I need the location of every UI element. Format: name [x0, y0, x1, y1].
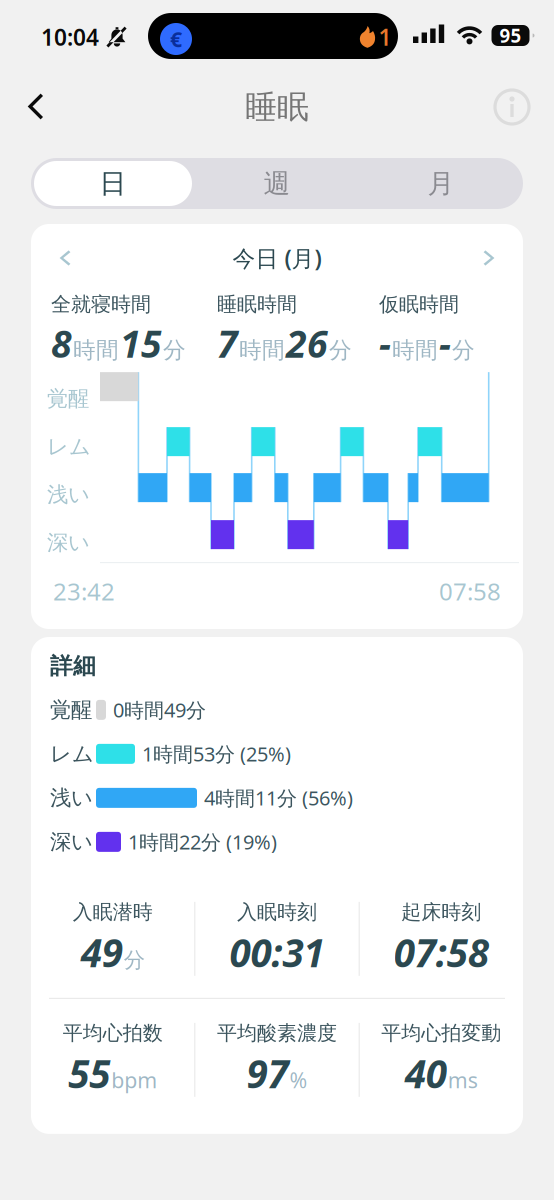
staticText: レム — [47, 433, 91, 460]
staticText: 時間 — [73, 336, 119, 364]
button[interactable]: Next day — [469, 240, 509, 276]
staticText: % — [289, 1066, 307, 1094]
staticText: 覚醒 — [47, 385, 89, 412]
staticText: 95 — [499, 23, 521, 48]
button[interactable]: Info — [484, 87, 540, 127]
staticText: 0時間49分 — [113, 697, 206, 723]
staticText: 平均心拍変動 — [381, 1021, 501, 1045]
staticText: 起床時刻 — [401, 900, 481, 924]
staticText: 4時間11分 (56%) — [204, 785, 353, 811]
staticText: 40 — [405, 1047, 447, 1099]
staticText: 07:58 — [439, 575, 501, 607]
staticText: 1時間53分 (25%) — [142, 741, 291, 767]
staticText: 全就寝時間 — [51, 292, 151, 317]
staticText: 49 — [81, 926, 123, 978]
staticText: 分 — [163, 336, 186, 364]
staticText: 入眠時刻 — [237, 900, 317, 924]
staticText: bpm — [111, 1066, 157, 1094]
staticText: 平均心拍数 — [63, 1021, 163, 1045]
staticText: 10:04 — [41, 22, 99, 52]
staticText: 分 — [452, 336, 475, 364]
staticText: レム — [50, 741, 94, 767]
staticText: 8 — [51, 319, 72, 368]
staticText: 今日 (月) — [232, 243, 321, 273]
button[interactable]: Back — [14, 82, 60, 132]
staticText: 26 — [286, 319, 328, 368]
button[interactable]: Previous day — [45, 240, 85, 276]
staticText: 時間 — [392, 336, 438, 364]
staticText: 23:42 — [53, 575, 115, 607]
staticText: 浅い — [47, 481, 90, 508]
staticText: - — [439, 319, 451, 368]
staticText: 97 — [246, 1047, 288, 1099]
staticText: 月 — [427, 167, 454, 200]
button[interactable]: 日 — [31, 158, 195, 209]
staticText: 15 — [120, 319, 162, 368]
button[interactable]: 週 — [195, 158, 359, 209]
staticText: 深い — [47, 529, 90, 556]
staticText: € — [170, 25, 182, 53]
staticText: 睡眠 — [245, 87, 309, 127]
staticText: 平均酸素濃度 — [217, 1021, 337, 1045]
staticText: 深い — [50, 829, 93, 855]
staticText: 入眠潜時 — [73, 900, 153, 924]
staticText: 浅い — [50, 785, 93, 811]
staticText: 日 — [99, 167, 126, 200]
staticText: 週 — [263, 167, 290, 200]
staticText: 詳細 — [50, 652, 96, 680]
staticText: 仮眠時間 — [379, 292, 459, 317]
staticText: ms — [448, 1066, 478, 1094]
staticText: 時間 — [239, 336, 285, 364]
button[interactable]: 月 — [359, 158, 523, 209]
staticText: 07:58 — [394, 926, 489, 978]
staticText: 分 — [329, 336, 352, 364]
staticText: 分 — [124, 947, 145, 973]
staticText: - — [379, 319, 391, 368]
staticText: 55 — [68, 1047, 110, 1099]
staticText: 覚醒 — [50, 697, 92, 723]
staticText: 1時間22分 (19%) — [128, 829, 277, 855]
staticText: 1 — [378, 22, 391, 52]
staticText: 00:31 — [229, 926, 324, 978]
staticText: 7 — [217, 319, 238, 368]
staticText: 睡眠時間 — [217, 292, 297, 317]
